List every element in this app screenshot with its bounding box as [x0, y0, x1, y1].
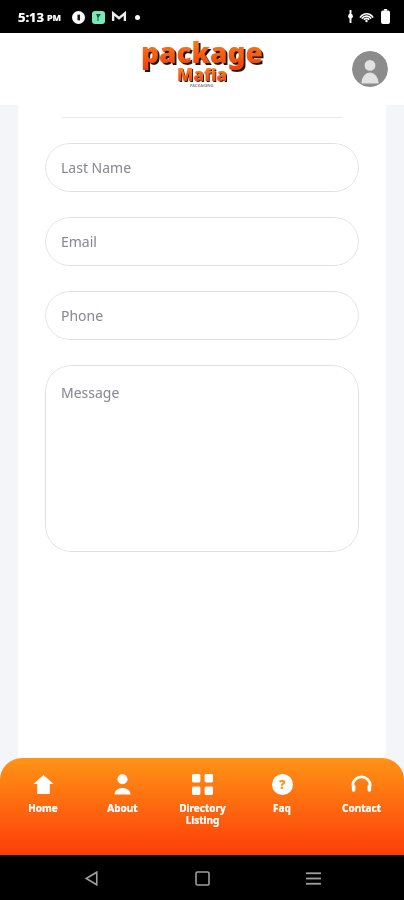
- staticText: Contact: [342, 801, 381, 815]
- button[interactable]: Home: [182, 858, 222, 898]
- button[interactable]: Back: [71, 858, 111, 898]
- staticText: Home: [28, 801, 58, 815]
- staticText: PACKAGING: [190, 83, 214, 88]
- button[interactable]: ?: [245, 770, 319, 815]
- staticText: package: [143, 35, 265, 73]
- staticText: Last Name: [61, 158, 132, 177]
- staticText: Phone: [61, 306, 104, 325]
- button[interactable]: Phone: [45, 291, 359, 340]
- staticText: package: [141, 33, 263, 71]
- button[interactable]: Account: [352, 51, 388, 87]
- staticText: Email: [61, 232, 97, 251]
- staticText: Message: [61, 383, 120, 402]
- button[interactable]: Recent apps: [293, 858, 333, 898]
- staticText: Mafia: [177, 63, 228, 86]
- button[interactable]: Contact: [324, 770, 398, 815]
- button[interactable]: Directory Listing: [165, 770, 239, 827]
- staticText: Faq: [273, 801, 291, 815]
- button[interactable]: Message: [45, 365, 359, 552]
- staticText: 5:13: [18, 8, 44, 26]
- button[interactable]: About: [85, 770, 159, 815]
- staticText: Send: [183, 810, 222, 832]
- staticText: Mafia: [178, 64, 229, 87]
- button[interactable]: Home: [6, 770, 80, 815]
- staticText: ?: [279, 775, 286, 793]
- button[interactable]: Send: [45, 796, 359, 845]
- staticText: PM: [47, 11, 62, 23]
- button[interactable]: Email: [45, 217, 359, 266]
- button[interactable]: Last Name: [45, 143, 359, 192]
- staticText: About: [107, 801, 138, 815]
- button[interactable]: package: [141, 33, 263, 99]
- staticText: Directory Listing: [179, 801, 226, 827]
